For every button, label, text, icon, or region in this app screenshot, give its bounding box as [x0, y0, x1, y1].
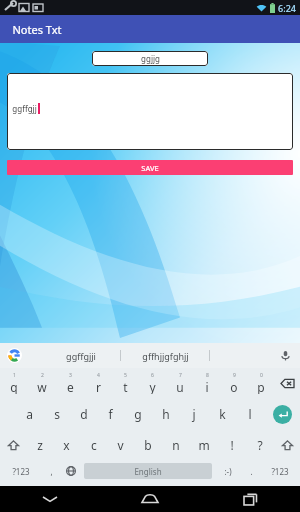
- staticText: s: [54, 406, 60, 422]
- staticText: g: [134, 406, 142, 422]
- staticText: ?123: [12, 466, 30, 477]
- button[interactable]: !: [218, 434, 246, 456]
- button[interactable]: v: [107, 434, 134, 456]
- staticText: z: [37, 437, 43, 453]
- staticText: r: [96, 379, 101, 394]
- button[interactable]: 0: [247, 372, 274, 394]
- staticText: ?123: [271, 466, 289, 477]
- button[interactable]: n: [162, 434, 190, 456]
- button[interactable]: a: [16, 403, 43, 425]
- staticText: l: [248, 406, 252, 422]
- button[interactable]: ,: [42, 463, 60, 479]
- button[interactable]: b: [134, 434, 162, 456]
- button[interactable]: .: [242, 463, 260, 479]
- staticText: SAVE: [141, 163, 159, 173]
- staticText: o: [230, 379, 238, 394]
- staticText: !: [230, 437, 234, 453]
- staticText: 8: [206, 372, 209, 379]
- button[interactable]: c: [80, 434, 107, 456]
- staticText: h: [162, 406, 170, 422]
- button[interactable]: Shift: [274, 434, 300, 456]
- staticText: y: [149, 379, 156, 394]
- staticText: 9: [233, 372, 236, 379]
- staticText: i: [205, 379, 209, 394]
- staticText: n: [172, 437, 180, 453]
- button[interactable]: English: [84, 463, 212, 479]
- staticText: 2: [41, 372, 44, 379]
- button[interactable]: 6: [139, 372, 166, 394]
- button[interactable]: :-): [214, 463, 242, 479]
- staticText: q: [10, 379, 18, 394]
- button[interactable]: 9: [220, 372, 247, 394]
- staticText: f: [108, 406, 113, 422]
- button[interactable]: h: [152, 403, 180, 425]
- button[interactable]: 5: [112, 372, 139, 394]
- button[interactable]: j: [180, 403, 208, 425]
- staticText: English: [134, 466, 162, 477]
- staticText: :-): [224, 466, 232, 477]
- staticText: x: [63, 437, 70, 453]
- staticText: 6:24: [278, 2, 296, 14]
- button[interactable]: Hide keyboard: [0, 486, 100, 512]
- staticText: Notes Txt: [12, 22, 62, 37]
- staticText: e: [67, 379, 74, 394]
- staticText: 0: [260, 372, 263, 379]
- button[interactable]: s: [43, 403, 70, 425]
- button[interactable]: ggffgjj: [7, 73, 293, 150]
- button[interactable]: Backspace: [274, 372, 300, 394]
- staticText: c: [91, 437, 97, 453]
- staticText: v: [117, 437, 124, 453]
- staticText: 4: [97, 372, 100, 379]
- button[interactable]: 8: [193, 372, 220, 394]
- staticText: 1: [13, 372, 16, 379]
- button[interactable]: Recent apps: [200, 486, 300, 512]
- button[interactable]: gffhjjgfghjj: [121, 343, 209, 368]
- button[interactable]: ggjjg: [92, 51, 208, 66]
- staticText: ggjjg: [141, 53, 160, 64]
- button[interactable]: z: [26, 434, 53, 456]
- button[interactable]: d: [70, 403, 97, 425]
- button[interactable]: Change language: [60, 463, 82, 479]
- button[interactable]: Shift: [0, 434, 26, 456]
- staticText: m: [198, 437, 210, 453]
- staticText: k: [219, 406, 226, 422]
- button[interactable]: 7: [166, 372, 193, 394]
- staticText: w: [37, 379, 47, 394]
- button[interactable]: Home: [100, 486, 200, 512]
- button[interactable]: SAVE: [7, 160, 293, 175]
- other: Google: [7, 348, 22, 363]
- button[interactable]: k: [208, 403, 236, 425]
- button[interactable]: m: [190, 434, 218, 456]
- button[interactable]: g: [124, 403, 152, 425]
- button[interactable]: ?: [246, 434, 274, 456]
- staticText: gffhjjgfghjj: [142, 350, 189, 362]
- button[interactable]: x: [53, 434, 80, 456]
- staticText: j: [192, 406, 196, 422]
- staticText: 7: [179, 372, 182, 379]
- staticText: ?: [257, 437, 263, 453]
- staticText: a: [26, 406, 33, 422]
- button[interactable]: 2: [28, 372, 56, 394]
- staticText: b: [144, 437, 152, 453]
- staticText: t: [123, 379, 128, 394]
- staticText: ggffgjj: [12, 103, 37, 114]
- staticText: 6: [151, 372, 154, 379]
- other: Voice input: [280, 350, 291, 361]
- button[interactable]: ?123: [260, 463, 300, 479]
- button[interactable]: 3: [56, 372, 84, 394]
- button[interactable]: f: [97, 403, 124, 425]
- staticText: ggffgjji: [66, 350, 96, 362]
- staticText: 3: [69, 372, 72, 379]
- button[interactable]: 1: [0, 372, 28, 394]
- staticText: ,: [50, 466, 53, 477]
- staticText: d: [80, 406, 88, 422]
- button[interactable]: 4: [84, 372, 112, 394]
- button[interactable]: Enter: [264, 403, 300, 425]
- staticText: p: [257, 379, 265, 394]
- staticText: .: [250, 466, 253, 477]
- button[interactable]: ?123: [0, 463, 42, 479]
- staticText: 5: [124, 372, 127, 379]
- button[interactable]: l: [236, 403, 264, 425]
- button[interactable]: ggffgjji: [42, 343, 120, 368]
- staticText: u: [176, 379, 184, 394]
